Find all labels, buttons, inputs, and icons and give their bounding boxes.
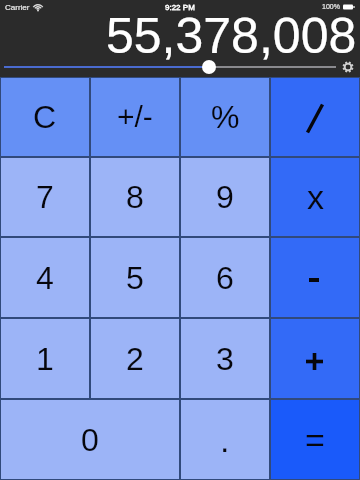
staticText: +/- — [117, 100, 153, 134]
button[interactable]: 9 — [180, 157, 270, 237]
staticText: 55,378,008 — [106, 8, 357, 56]
button[interactable]: 7 — [0, 157, 90, 237]
staticText: 5 — [126, 260, 144, 296]
button[interactable]: C — [0, 77, 90, 157]
staticText: 4 — [36, 260, 54, 296]
button[interactable]: +/- — [90, 77, 180, 157]
button[interactable] — [0, 62, 360, 77]
button[interactable]: 2 — [90, 318, 180, 399]
button[interactable]: = — [270, 399, 360, 480]
button[interactable]: . — [180, 399, 270, 480]
staticText: C — [33, 99, 57, 135]
staticText: 9 — [216, 179, 234, 215]
button[interactable]: 5 — [90, 237, 180, 318]
button[interactable]: 1 — [0, 318, 90, 399]
staticText: x — [307, 178, 324, 216]
button[interactable]: % — [180, 77, 270, 157]
button[interactable]: 4 — [0, 237, 90, 318]
button[interactable]: 8 — [90, 157, 180, 237]
staticText: 3 — [216, 341, 234, 377]
staticText: 9:22 PM — [165, 3, 195, 12]
button[interactable]: 6 — [180, 237, 270, 318]
staticText: Carrier — [5, 3, 30, 12]
staticText: 2 — [126, 341, 144, 377]
staticText: 7 — [36, 179, 54, 215]
staticText: . — [220, 421, 230, 459]
staticText: % — [211, 99, 240, 135]
staticText: 8 — [126, 179, 144, 215]
button[interactable] — [270, 77, 360, 157]
button[interactable] — [270, 237, 360, 318]
button[interactable]: 3 — [180, 318, 270, 399]
button[interactable]: x — [270, 157, 360, 237]
button[interactable] — [270, 318, 360, 399]
staticText: 1 — [36, 341, 54, 377]
staticText: 0 — [81, 422, 99, 458]
staticText: 100% — [322, 3, 340, 11]
staticText: = — [305, 421, 325, 459]
staticText: 6 — [216, 260, 234, 296]
button[interactable]: 0 — [0, 399, 180, 480]
